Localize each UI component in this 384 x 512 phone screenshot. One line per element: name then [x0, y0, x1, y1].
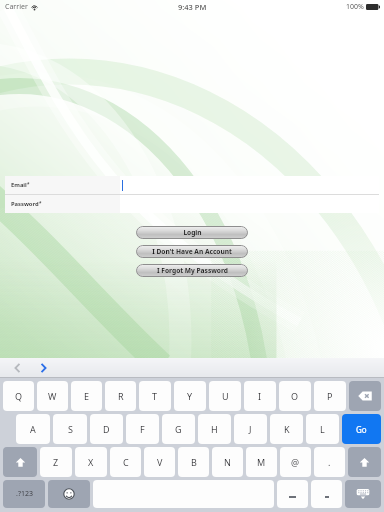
staticText: T [152, 390, 158, 402]
button[interactable]: Email [5, 176, 379, 194]
button[interactable]: Shift [3, 447, 37, 477]
button[interactable]: E [71, 381, 102, 411]
staticText: Y [187, 390, 193, 402]
staticText: * [39, 200, 42, 206]
staticText: D [103, 423, 110, 435]
staticText: B [191, 456, 197, 468]
button[interactable]: Hide keyboard [345, 480, 381, 508]
button[interactable]: F [126, 414, 159, 444]
staticText: V [157, 456, 163, 468]
button[interactable]: .?123 [3, 480, 45, 508]
button[interactable]: B [178, 447, 209, 477]
button[interactable]: Shift [348, 447, 381, 477]
staticText: I Don't Have An Account [152, 247, 232, 256]
staticText: C [123, 456, 129, 468]
button[interactable]: U [209, 381, 241, 411]
staticText: I Forgot My Password [157, 266, 228, 275]
button[interactable]: V [144, 447, 175, 477]
staticText: P [327, 390, 333, 402]
staticText: U [222, 390, 229, 402]
button[interactable]: D [90, 414, 123, 444]
button[interactable]: . [314, 447, 345, 477]
staticText: H [211, 423, 218, 435]
staticText: M [257, 456, 266, 468]
button[interactable]: I Don't Have An Account [136, 245, 248, 258]
staticText: A [30, 423, 36, 435]
button[interactable]: Previous field [8, 359, 26, 377]
button[interactable]: Dash [311, 480, 342, 508]
button[interactable]: Q [3, 381, 34, 411]
staticText: Go [356, 424, 367, 435]
button[interactable]: J [234, 414, 267, 444]
staticText: W [48, 390, 57, 402]
staticText: 9:43 PM [178, 2, 207, 12]
staticText: J [249, 423, 252, 435]
staticText: X [88, 456, 94, 468]
button[interactable]: Go [342, 414, 381, 444]
button[interactable]: K [270, 414, 303, 444]
button[interactable]: L [306, 414, 339, 444]
button[interactable]: W [37, 381, 68, 411]
staticText: O [291, 390, 299, 402]
button[interactable]: C [110, 447, 141, 477]
staticText: * [27, 181, 30, 187]
button[interactable]: Underscore [277, 480, 308, 508]
button[interactable]: Next field [34, 359, 52, 377]
staticText: N [224, 456, 231, 468]
button[interactable]: Y [174, 381, 206, 411]
staticText: Q [15, 390, 23, 402]
staticText: Z [53, 456, 59, 468]
button[interactable]: S [53, 414, 87, 444]
button[interactable]: I Forgot My Password [136, 264, 248, 277]
button[interactable]: P [314, 381, 346, 411]
button[interactable]: I [244, 381, 276, 411]
staticText: I [258, 390, 262, 402]
button[interactable]: T [139, 381, 171, 411]
button[interactable]: Password [5, 195, 379, 213]
staticText: Password [11, 200, 39, 208]
button[interactable]: Z [40, 447, 72, 477]
button[interactable]: G [162, 414, 195, 444]
staticText: K [284, 423, 290, 435]
button[interactable]: R [105, 381, 136, 411]
staticText: 100% [346, 2, 364, 12]
staticText: .?123 [16, 489, 33, 499]
staticText: S [68, 423, 73, 435]
button[interactable]: H [198, 414, 231, 444]
button[interactable]: Emoji [48, 480, 90, 508]
staticText: F [140, 423, 145, 435]
staticText: E [84, 390, 90, 402]
button[interactable]: Backspace [349, 381, 381, 411]
button[interactable]: Login [136, 226, 248, 239]
staticText: Carrier [5, 2, 28, 12]
button[interactable]: @ [280, 447, 311, 477]
button[interactable]: N [212, 447, 243, 477]
button[interactable]: A [16, 414, 50, 444]
staticText: Email [11, 181, 27, 189]
button[interactable]: X [75, 447, 107, 477]
staticText: Login [183, 228, 202, 237]
button[interactable]: M [246, 447, 277, 477]
button[interactable]: O [279, 381, 311, 411]
staticText: G [175, 423, 182, 435]
staticText: L [320, 423, 325, 435]
staticText: . [328, 456, 331, 468]
staticText: @ [291, 456, 300, 468]
staticText: R [118, 390, 124, 402]
